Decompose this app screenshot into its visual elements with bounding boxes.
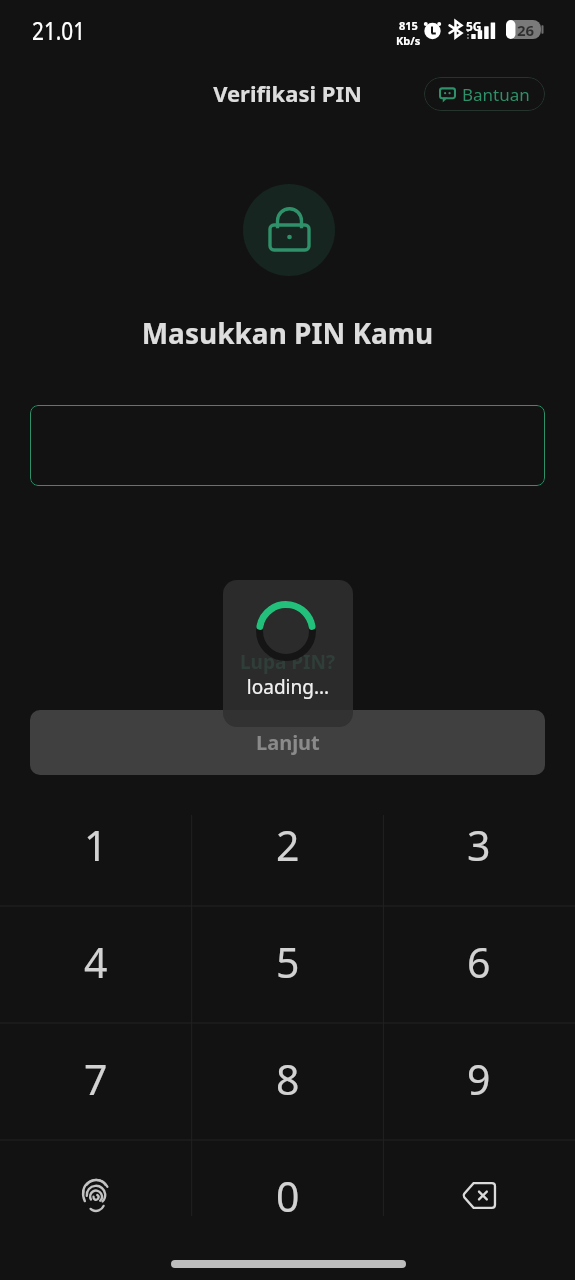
button[interactable]: Lanjut [30, 710, 545, 775]
button[interactable] [30, 405, 545, 486]
staticText: 9 [467, 1051, 491, 1107]
button[interactable]: Fingerprint unlock [0, 1140, 192, 1257]
staticText: 3 [467, 817, 491, 873]
button[interactable]: 5 [192, 906, 384, 1023]
staticText: Masukkan PIN Kamu [0, 314, 575, 352]
button[interactable]: 7 [0, 1023, 192, 1140]
staticText: 21.01 [32, 12, 86, 47]
button[interactable]: 0 [192, 1140, 384, 1257]
staticText: 5G [466, 18, 482, 34]
other: Backspace [462, 1181, 496, 1210]
other: Fingerprint unlock [82, 1178, 110, 1212]
staticText: 1 [84, 817, 108, 873]
staticText: Bantuan [462, 83, 530, 106]
button[interactable]: 9 [383, 1023, 575, 1140]
staticText: Kb/s [396, 33, 421, 48]
staticText: 815 [399, 18, 418, 33]
staticText: 6 [467, 934, 491, 990]
staticText: 26 [517, 20, 535, 39]
button[interactable]: 8 [192, 1023, 384, 1140]
button[interactable]: 6 [383, 906, 575, 1023]
button[interactable]: 1 [0, 789, 192, 906]
staticText: 2 [276, 817, 300, 873]
staticText: 7 [84, 1051, 108, 1107]
staticText: 4 [84, 934, 108, 990]
button[interactable]: 2 [192, 789, 384, 906]
button[interactable]: Lupa PIN? [0, 649, 575, 675]
button[interactable]: 3 [383, 789, 575, 906]
button[interactable]: Backspace [383, 1140, 575, 1257]
staticText: Verifikasi PIN [0, 78, 575, 108]
button[interactable]: 4 [0, 906, 192, 1023]
button[interactable]: Bantuan [424, 77, 545, 111]
staticText: Lanjut [256, 729, 320, 756]
staticText: loading... [223, 674, 353, 700]
staticText: 8 [276, 1051, 300, 1107]
staticText: 5 [276, 934, 300, 990]
staticText: 0 [276, 1168, 300, 1224]
